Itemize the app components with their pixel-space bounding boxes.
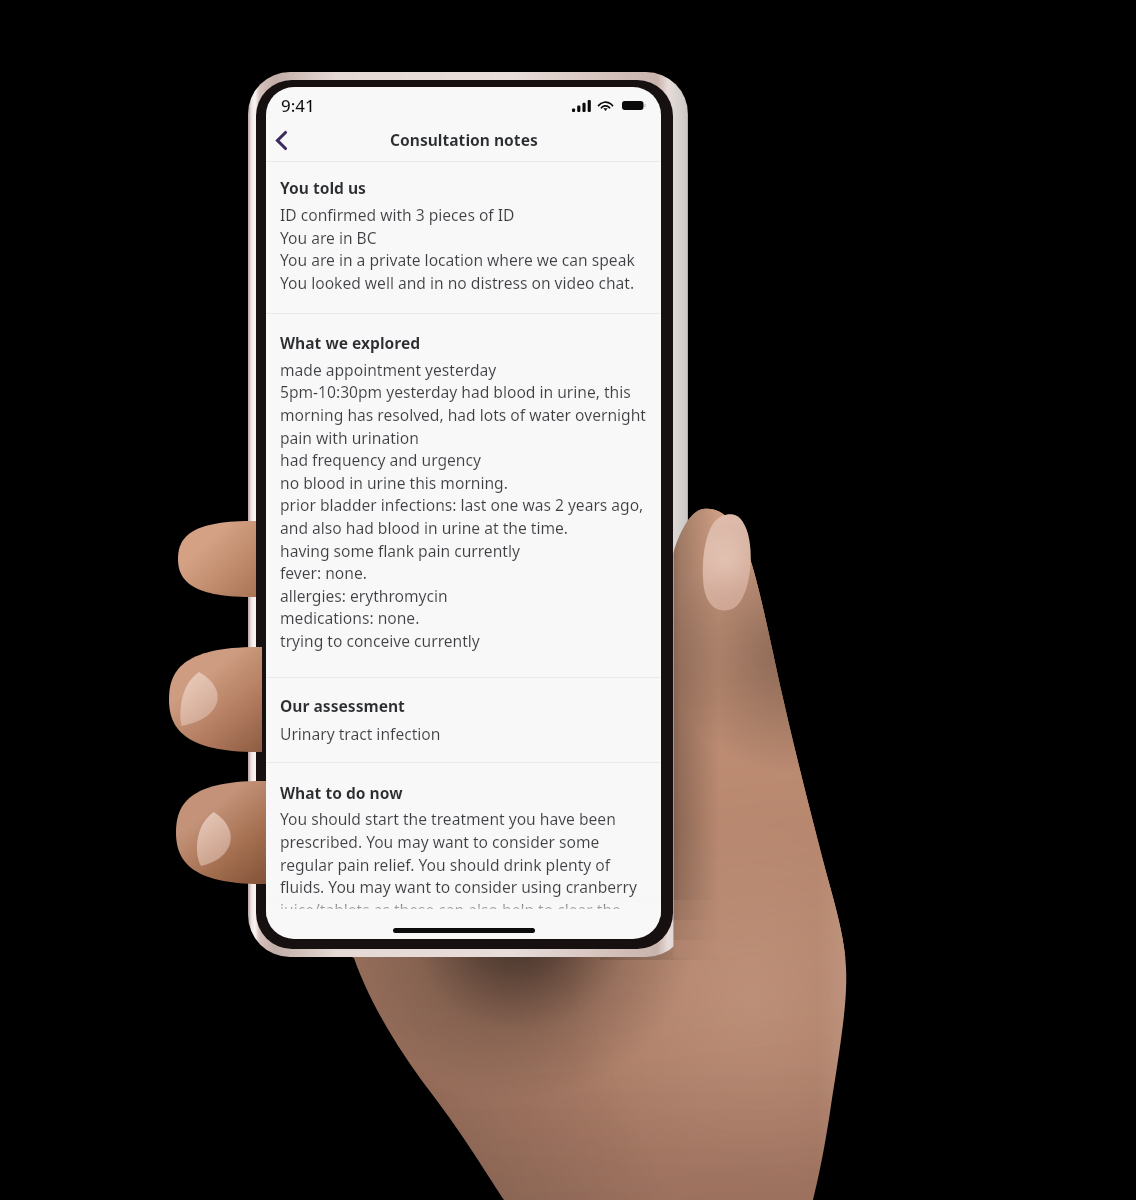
staticText: prescribed. You may want to consider som… [280,831,600,852]
staticText: You are in a private location where we c… [280,249,635,270]
staticText: prior bladder infections: last one was 2… [280,494,644,515]
staticText: having some flank pain currently [280,540,520,561]
staticText: and also had blood in urine at the time. [280,517,568,538]
staticText: Our assessment [280,695,405,716]
staticText: You are in BC [280,227,377,248]
staticText: had frequency and urgency [280,449,481,470]
staticText: What to do now [280,782,403,803]
staticText: no blood in urine this morning. [280,472,508,493]
staticText: Consultation notes [390,129,538,150]
staticText: What we explored [280,332,421,353]
staticText: medications: none. [280,607,420,628]
staticText: You should start the treatment you have … [280,808,616,829]
staticText: ID confirmed with 3 pieces of ID [280,204,515,225]
staticText: 5pm-10:30pm yesterday had blood in urine… [280,381,631,402]
staticText: trying to conceive currently [280,630,480,651]
staticText: made appointment yesterday [280,359,497,380]
staticText: fluids. You may want to consider using c… [280,876,637,897]
staticText: You told us [280,177,366,198]
staticText: Urinary tract infection [280,723,441,744]
staticText: pain with urination [280,427,419,448]
staticText: fever: none. [280,562,367,583]
staticText: regular pain relief. You should drink pl… [280,854,611,875]
staticText: You looked well and in no distress on vi… [280,272,635,293]
staticText: morning has resolved, had lots of water … [280,404,646,425]
button[interactable]: Back [266,124,308,161]
staticText: 9:41 [281,94,315,117]
staticText: allergies: erythromycin [280,585,448,606]
staticText: juice/tablets as these can also help to … [280,899,621,909]
